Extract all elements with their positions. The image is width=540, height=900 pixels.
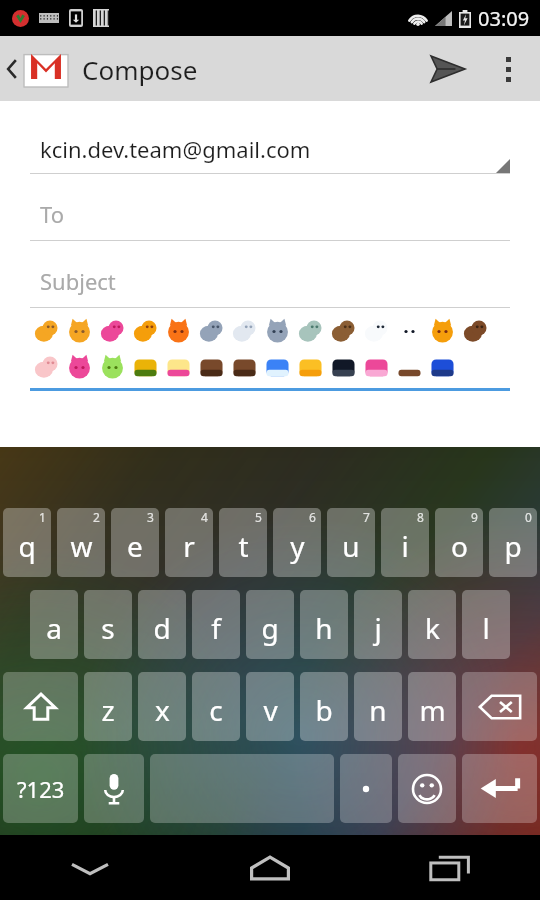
staticText: 9 [471,509,478,525]
staticText: 6 [309,509,316,525]
staticText: t [238,527,249,565]
button[interactable]: a [30,590,78,659]
button[interactable]: Enter [462,754,537,823]
staticText: s [101,609,115,647]
button[interactable]: Voice input [84,754,144,823]
button[interactable]: g [246,590,294,659]
staticText: 3 [147,509,154,525]
staticText: r [183,527,195,565]
button[interactable]: u [327,508,375,577]
button[interactable]: t [219,508,267,577]
staticText: b [315,691,333,729]
button[interactable]: ?123 [3,754,78,823]
button[interactable]: Hide keyboard [0,835,180,900]
staticText: ?123 [17,774,65,804]
staticText: k [425,609,440,647]
staticText: f [211,609,221,647]
staticText: o [451,527,468,565]
staticText: 8 [417,509,424,525]
staticText: Subject [40,266,116,296]
staticText: l [482,609,490,647]
staticText: g [261,609,279,647]
staticText: y [290,527,305,565]
staticText: 0 [525,509,532,525]
button[interactable]: e [111,508,159,577]
button[interactable]: w [57,508,105,577]
staticText: q [18,527,36,565]
staticText: 5 [255,509,262,525]
staticText: 1 [39,509,46,525]
staticText: kcin.dev.team@gmail.com [40,134,311,164]
staticText: w [70,527,93,565]
staticText: To [40,199,65,229]
staticText: h [315,609,333,647]
button[interactable]: b [300,672,348,741]
button[interactable]: d [138,590,186,659]
staticText: z [101,691,115,729]
staticText: c [209,691,223,729]
staticText: j [374,609,382,647]
button[interactable]: y [273,508,321,577]
staticText: p [504,527,522,565]
button[interactable]: r [165,508,213,577]
button[interactable]: Compose [0,51,206,87]
staticText: x [155,691,170,729]
button[interactable]: Recent apps [360,835,540,900]
button[interactable]: v [246,672,294,741]
button[interactable]: z [84,672,132,741]
button[interactable]: p [489,508,537,577]
button[interactable]: n [354,672,402,741]
button[interactable]: Subject [30,255,510,307]
staticText: v [263,691,278,729]
button[interactable]: f [192,590,240,659]
button[interactable]: c [192,672,240,741]
button[interactable]: o [435,508,483,577]
button[interactable]: l [462,590,510,659]
staticText: i [401,527,409,565]
staticText: 4 [201,509,208,525]
button[interactable]: m [408,672,456,741]
button[interactable]: Space [150,754,334,823]
button[interactable]: q [3,508,51,577]
staticText: m [419,691,446,729]
button[interactable]: s [84,590,132,659]
button[interactable]: kcin.dev.team@gmail.com [30,125,510,173]
button[interactable]: x [138,672,186,741]
button[interactable]: Delete [462,672,537,741]
staticText: 2 [93,509,100,525]
button[interactable]: Shift [3,672,78,741]
button[interactable]: k [408,590,456,659]
button[interactable]: Home [180,835,360,900]
button[interactable]: h [300,590,348,659]
staticText: e [127,527,143,565]
staticText: d [153,609,171,647]
staticText: Compose [82,52,198,87]
button[interactable] [30,314,510,391]
button[interactable]: j [354,590,402,659]
button[interactable]: Send [416,37,480,101]
button[interactable]: Emoji [398,754,456,823]
staticText: n [369,691,387,729]
staticText: 03:09 [478,5,530,32]
button[interactable] [340,754,392,823]
button[interactable]: To [30,188,510,240]
staticText: u [342,527,360,565]
button[interactable]: More options [480,41,536,97]
staticText: a [46,609,62,647]
button[interactable]: i [381,508,429,577]
staticText: 7 [363,509,370,525]
